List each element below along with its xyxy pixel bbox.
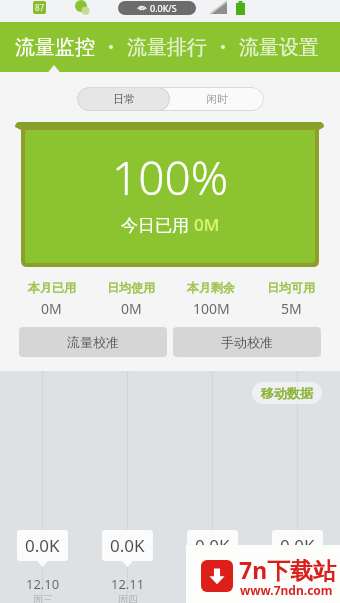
button[interactable]: 本月剩余 [171,280,251,318]
button[interactable]: 手动校准 [173,327,321,357]
staticText: 12.10 [26,575,60,593]
button[interactable]: 流量校准 [19,327,167,357]
button[interactable]: 0.0K [0,530,85,603]
staticText: 0.0K [195,534,230,557]
staticText: 今日已用 [121,213,194,236]
staticText: 周六 [288,593,308,603]
button[interactable]: 流量监控 [15,35,95,60]
staticText: 12.11 [111,575,145,593]
staticText: 0M [121,299,142,318]
staticText: 0.0K [110,534,145,557]
button[interactable]: 0.0K [170,530,255,603]
staticText: 100M [193,299,230,318]
button[interactable]: 流量排行 [127,35,207,60]
staticText: 周四 [118,593,138,603]
staticText: www.7ndn.com [240,582,333,598]
button[interactable]: 100% [0,122,340,267]
staticText: 0.0K/S [150,2,177,14]
staticText: 日常 [113,92,135,106]
button[interactable]: 0.0K [85,530,170,603]
button[interactable]: 日均可用 [251,280,331,318]
button[interactable]: 日常 [77,87,170,111]
staticText: 本月剩余 [187,280,235,295]
staticText: 流量设置 [239,35,319,60]
staticText: 移动数据 [261,385,313,401]
button[interactable]: 移动数据 [252,382,322,404]
staticText: 100% [112,146,229,209]
button[interactable]: 本月已用 [12,280,91,318]
staticText: 5M [281,299,302,318]
staticText: 0.0K [280,534,315,557]
button[interactable]: 流量设置 [239,35,319,60]
staticText: 本月已用 [28,280,76,295]
staticText: 手动校准 [221,334,273,350]
staticText: 0M [194,213,220,236]
staticText: 流量监控 [15,35,95,60]
staticText: 7n下载站 [239,554,337,585]
staticText: 日均可用 [267,280,315,295]
staticText: 87 [35,2,45,13]
staticText: 日均使用 [107,280,155,295]
button[interactable]: 0.0K [255,530,340,603]
staticText: 流量排行 [127,35,207,60]
staticText: 周三 [33,593,53,603]
staticText: 闲时 [206,92,228,106]
staticText: 12.13 [281,575,315,593]
button[interactable]: 闲时 [170,87,264,111]
staticText: 流量校准 [67,334,119,350]
staticText: 0.0K [25,534,60,557]
staticText: 12.12 [196,575,230,593]
button[interactable]: 日均使用 [91,280,171,318]
staticText: 0M [41,299,62,318]
